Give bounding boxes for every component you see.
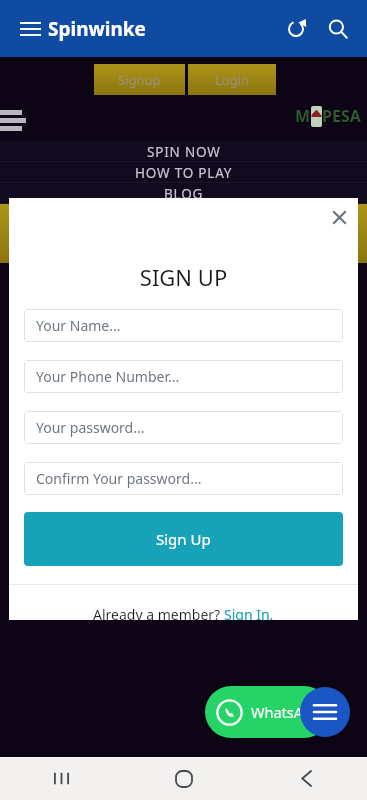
staticText: Spinwinke xyxy=(48,16,146,42)
button[interactable]: Your Phone Number... xyxy=(25,361,342,392)
button[interactable]: Your Name... xyxy=(25,310,342,341)
staticText: Sign Up xyxy=(156,529,211,549)
button[interactable]: 1000 xyxy=(256,367,325,401)
button[interactable]: Sign Up xyxy=(24,512,343,566)
button[interactable]: HOW TO PLAY xyxy=(0,162,367,183)
staticText: Your Phone Number... xyxy=(36,367,180,386)
staticText: Sign In. xyxy=(224,605,274,620)
button[interactable]: Confirm Your password... xyxy=(25,463,342,494)
button[interactable]: 200 xyxy=(118,367,187,401)
staticText: Confirm Your password... xyxy=(36,469,202,488)
staticText: Your Name... xyxy=(36,316,121,335)
staticText: 500 xyxy=(207,373,237,396)
button[interactable]: Recent apps xyxy=(0,757,123,800)
staticText: Signup xyxy=(118,71,161,89)
staticText: SIGN UP xyxy=(9,262,358,292)
staticText: Already a member? xyxy=(93,605,224,620)
staticText: PESA xyxy=(322,105,361,127)
button[interactable]: BLOG xyxy=(0,183,367,204)
button[interactable]: Spin Demo xyxy=(89,417,279,451)
button[interactable]: Close dialog xyxy=(320,198,358,236)
staticText: M xyxy=(295,105,311,127)
staticText: 200 xyxy=(138,373,168,396)
button[interactable]: 100 xyxy=(48,367,118,401)
staticText: Spin Demo xyxy=(144,424,224,444)
staticText: HOW TO PLAY xyxy=(135,164,233,182)
button[interactable]: SPIN NOW xyxy=(0,141,367,162)
staticText: 1000 xyxy=(271,373,310,396)
button[interactable]: Open menu xyxy=(300,687,350,737)
button[interactable]: WhatsA xyxy=(205,686,330,738)
staticText: Login xyxy=(215,71,250,89)
button[interactable]: Signup xyxy=(94,64,185,95)
staticText: CHOOSE YOUR DEMO STAKE TO PLAY xyxy=(0,341,367,359)
staticText: SPIN NOW xyxy=(147,143,221,161)
button[interactable]: Your password... xyxy=(25,412,342,443)
staticText: Spin & win real cash prizes instantly xyxy=(0,283,367,301)
button[interactable]: Sign In. xyxy=(224,605,274,620)
staticText: Your password... xyxy=(36,418,145,437)
staticText: WhatsA xyxy=(251,702,304,722)
button[interactable]: Reload page xyxy=(275,8,317,50)
button[interactable]: Back xyxy=(245,757,367,800)
button[interactable]: Open navigation menu xyxy=(12,11,48,47)
button[interactable]: 500 xyxy=(187,367,256,401)
button[interactable]: Login xyxy=(188,64,276,95)
staticText: 100 xyxy=(68,373,98,396)
button[interactable]: Search xyxy=(317,8,359,50)
button[interactable]: Home xyxy=(123,757,245,800)
staticText: BLOG xyxy=(164,185,204,203)
